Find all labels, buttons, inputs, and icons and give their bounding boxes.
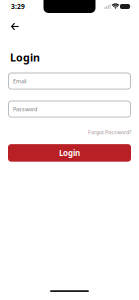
staticText: Password: [13, 105, 37, 113]
staticText: Email: [13, 77, 26, 85]
button[interactable]: Forgot Password?: [88, 129, 131, 136]
button[interactable]: Email: [8, 73, 131, 90]
button[interactable]: Login: [8, 144, 131, 162]
staticText: Login: [10, 50, 40, 65]
staticText: 3:29: [11, 2, 25, 11]
button[interactable]: Password: [8, 101, 131, 118]
button[interactable]: Back: [0, 14, 19, 30]
staticText: Login: [59, 148, 80, 158]
staticText: Forgot Password?: [88, 129, 131, 136]
